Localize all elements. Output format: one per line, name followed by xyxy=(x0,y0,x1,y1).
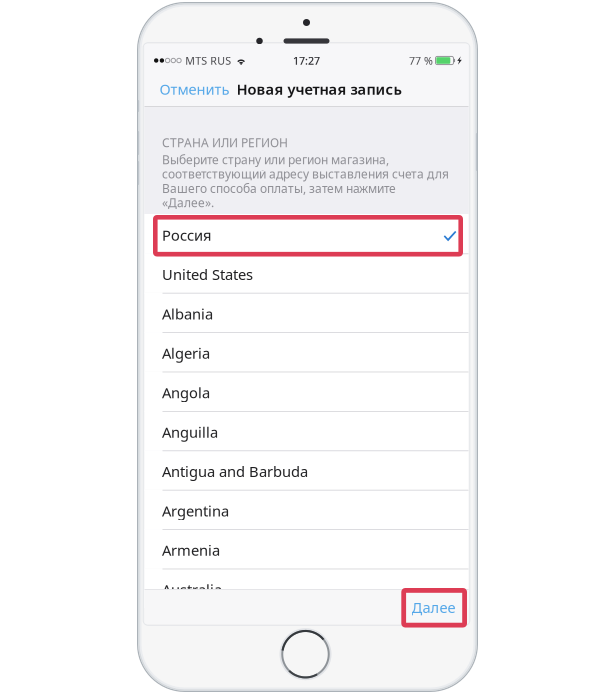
button[interactable]: Отменить xyxy=(144,76,233,108)
staticText: Albania xyxy=(162,304,213,323)
button[interactable]: Россия xyxy=(144,214,468,253)
staticText: Algeria xyxy=(162,343,210,363)
staticText: Отменить xyxy=(159,79,229,99)
staticText: Anguilla xyxy=(162,422,218,442)
staticText: MTS RUS xyxy=(185,53,231,68)
staticText: Armenia xyxy=(162,540,220,560)
staticText: Новая учетная запись xyxy=(236,79,401,99)
button[interactable]: Australia xyxy=(144,569,468,608)
button[interactable]: Albania xyxy=(144,293,468,332)
staticText: Argentina xyxy=(162,501,229,520)
staticText: СТРАНА ИЛИ РЕГИОН xyxy=(162,134,288,150)
button[interactable]: Angola xyxy=(144,372,468,411)
staticText: Выберите страну или регион магазина, xyxy=(162,152,389,168)
button[interactable]: Далее xyxy=(399,590,468,624)
staticText: 77 % xyxy=(409,53,433,68)
staticText: «Далее». xyxy=(162,195,214,210)
staticText: Antigua and Barbuda xyxy=(162,462,308,481)
button[interactable]: Anguilla xyxy=(144,411,468,450)
staticText: Australia xyxy=(162,580,222,599)
staticText: Россия xyxy=(162,225,211,245)
button[interactable]: Antigua and Barbuda xyxy=(144,450,468,490)
staticText: United States xyxy=(162,265,253,284)
staticText: 17:27 xyxy=(293,53,320,68)
staticText: соответствующий адресу выставления счета… xyxy=(162,166,449,182)
button[interactable]: Armenia xyxy=(144,529,468,569)
button[interactable]: Algeria xyxy=(144,332,468,372)
button[interactable]: United States xyxy=(144,253,468,293)
staticText: Далее xyxy=(411,598,455,617)
staticText: Angola xyxy=(162,383,210,402)
button[interactable]: Argentina xyxy=(144,490,468,529)
staticText: Вашего способа оплаты, затем нажмите xyxy=(162,180,396,196)
